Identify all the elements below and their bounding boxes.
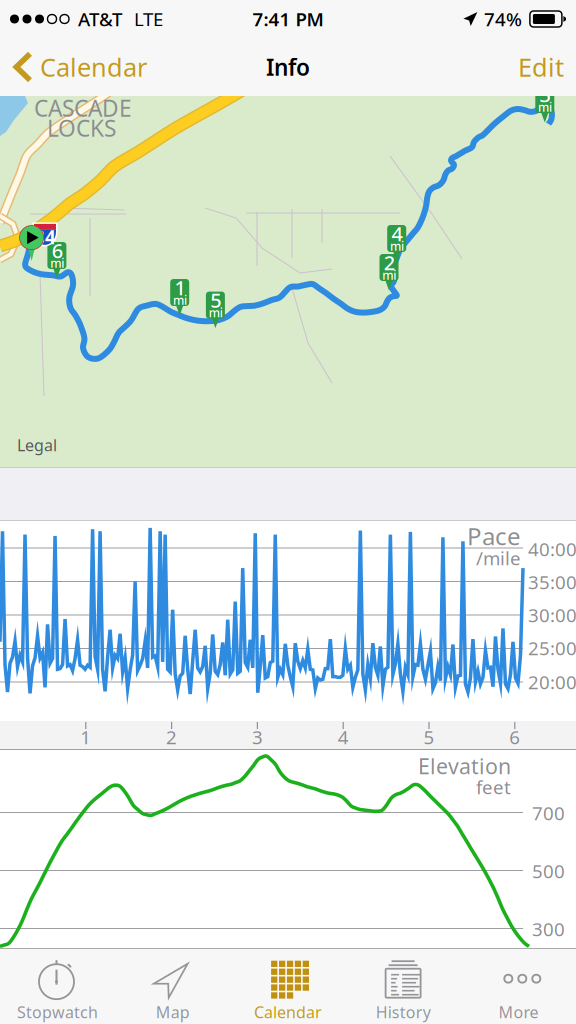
staticText: mi: [209, 305, 223, 320]
button[interactable]: History: [346, 948, 461, 1024]
staticText: LTE: [134, 7, 163, 31]
staticText: Pace: [467, 520, 521, 552]
button[interactable]: Calendar: [0, 38, 155, 96]
staticText: 6: [52, 237, 63, 264]
staticText: 4: [338, 725, 349, 749]
staticText: 1: [80, 725, 91, 749]
staticText: 3: [540, 81, 551, 108]
staticText: Legal: [17, 434, 57, 456]
staticText: CASCADE: [34, 93, 132, 123]
staticText: /mile: [476, 546, 521, 570]
staticText: Map: [156, 1001, 190, 1023]
button[interactable]: More: [461, 948, 576, 1024]
staticText: 7:41 PM: [252, 7, 323, 31]
button[interactable]: Edit: [490, 38, 564, 96]
staticText: 4: [391, 220, 402, 247]
staticText: mi: [382, 267, 396, 283]
staticText: Info: [266, 52, 310, 82]
staticText: More: [498, 1001, 538, 1023]
staticText: 6: [509, 725, 520, 749]
staticText: mi: [173, 292, 187, 308]
staticText: feet: [476, 775, 511, 799]
staticText: 35:00: [528, 570, 576, 594]
staticText: 20:00: [528, 670, 576, 694]
staticText: 74%: [484, 7, 522, 31]
button[interactable]: Calendar: [230, 948, 346, 1024]
staticText: 2: [384, 249, 395, 276]
staticText: 3: [252, 725, 263, 749]
staticText: History: [376, 1001, 431, 1023]
staticText: 25:00: [528, 636, 576, 660]
button[interactable]: Map: [115, 948, 230, 1024]
staticText: mi: [50, 255, 64, 271]
staticText: 500: [532, 859, 565, 883]
staticText: 5: [423, 725, 434, 749]
staticText: 2: [166, 725, 177, 749]
staticText: 40:00: [528, 537, 576, 561]
staticText: Calendar: [40, 50, 147, 84]
staticText: 300: [532, 917, 565, 941]
staticText: Edit: [518, 50, 564, 84]
staticText: mi: [390, 238, 404, 254]
staticText: Calendar: [254, 1001, 322, 1023]
staticText: AT&T: [78, 7, 122, 31]
staticText: Elevation: [418, 752, 511, 780]
staticText: 5: [210, 287, 221, 313]
staticText: 84: [34, 224, 56, 249]
button[interactable]: Stopwatch: [0, 948, 115, 1024]
staticText: 700: [532, 801, 565, 825]
staticText: Stopwatch: [17, 1001, 98, 1023]
staticText: mi: [538, 99, 552, 115]
staticText: 1: [174, 274, 185, 301]
staticText: LOCKS: [47, 113, 116, 143]
staticText: 30:00: [528, 603, 576, 627]
